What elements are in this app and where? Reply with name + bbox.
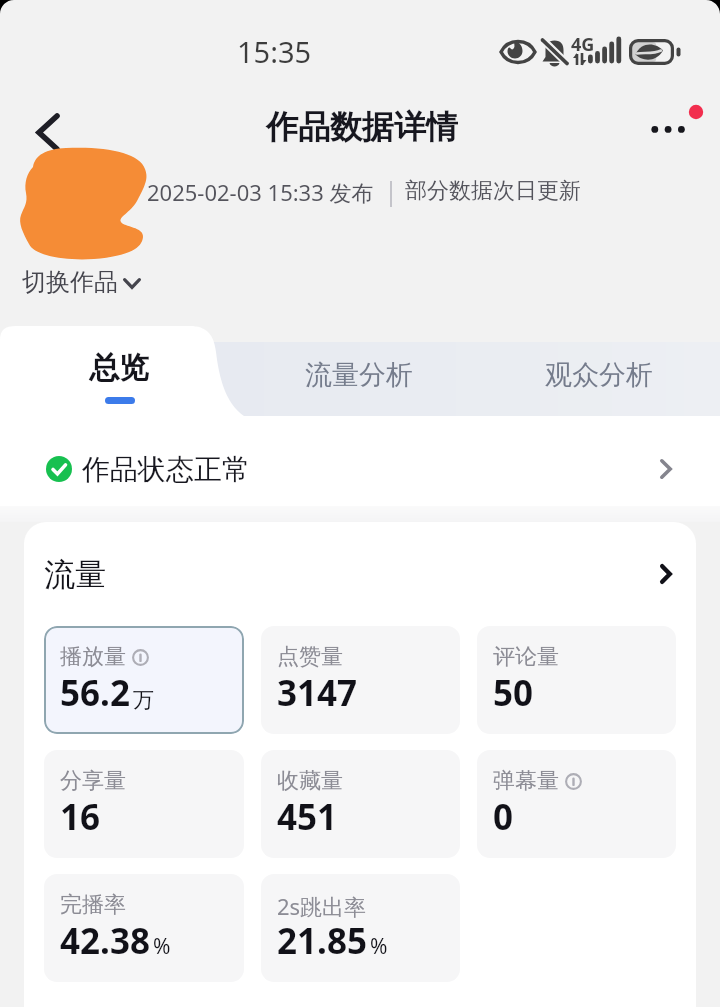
button[interactable]: More options [636,92,706,150]
staticText: 总览 [89,349,149,387]
staticText: 0 [493,793,514,841]
staticText: 完播率 [60,891,126,919]
button[interactable]: 完播率 [44,874,244,982]
staticText: 21.85 [277,917,367,965]
staticText: 50 [493,669,534,717]
staticText: 切换作品 [22,267,118,297]
staticText: 451 [277,793,338,841]
staticText: 分享量 [60,767,126,795]
button[interactable]: 作品状态正常 [0,424,720,514]
button[interactable]: 流量分析 [246,341,471,416]
button[interactable]: 点赞量 [261,626,460,734]
button[interactable]: Back [17,100,81,164]
staticText: 收藏量 [277,767,343,795]
button[interactable]: 播放量 [44,626,244,734]
staticText: 流量 [44,555,106,594]
staticText: 56.2 [60,669,130,717]
staticText: 万 [133,687,154,713]
button[interactable]: 流量 [24,522,696,626]
button[interactable]: 观众分析 [486,341,711,416]
staticText: 2s跳出率 [277,891,367,921]
staticText: 观众分析 [545,358,653,392]
staticText: 15:35 [237,32,312,71]
staticText: 播放量 [60,643,126,671]
button[interactable]: 2s跳出率 [261,874,460,982]
staticText: 部分数据次日更新 [405,177,581,205]
staticText: 评论量 [493,643,559,671]
staticText: 16 [60,793,101,841]
staticText: 2025-02-03 15:33 发布 [147,177,374,207]
button[interactable]: 收藏量 [261,750,460,858]
button[interactable]: 弹幕量 [477,750,676,858]
button[interactable]: 总览 [0,322,222,416]
staticText: 点赞量 [277,643,343,671]
button[interactable]: 切换作品 [14,262,149,302]
staticText: 作品状态正常 [82,452,250,487]
button[interactable]: 分享量 [44,750,244,858]
staticText: 3147 [277,669,358,717]
staticText: % [153,932,171,961]
staticText: 作品数据详情 [266,107,458,147]
staticText: % [370,932,388,961]
button[interactable]: 评论量 [477,626,676,734]
staticText: 弹幕量 [493,767,559,795]
staticText: 流量分析 [305,358,413,392]
staticText: 4G [571,32,595,57]
staticText: 42.38 [60,917,150,965]
